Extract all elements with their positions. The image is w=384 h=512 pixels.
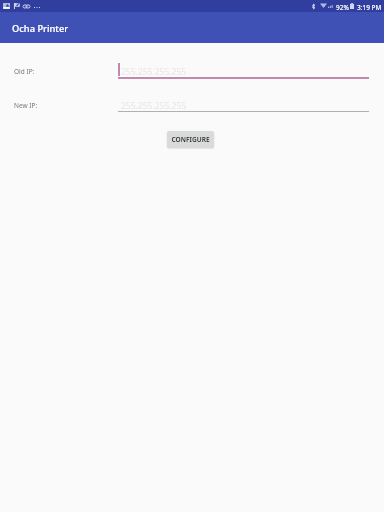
button[interactable]: Old IP address input [118, 63, 369, 79]
button[interactable]: New IP address input [118, 97, 369, 112]
other: Screenshot notification [3, 3, 10, 9]
staticText: 255.255.255.255 [121, 100, 187, 112]
staticText: Old IP: [14, 67, 35, 76]
other: Link notification [23, 4, 30, 9]
staticText: CONFIGURE [171, 135, 210, 144]
staticText: 255.255.255.255 [121, 66, 187, 78]
staticText: Ocha Printer [12, 22, 69, 35]
button[interactable]: CONFIGURE [167, 131, 214, 148]
staticText: 92% [336, 3, 349, 12]
staticText: New IP: [14, 101, 38, 110]
staticText: 3:19 PM [357, 3, 382, 12]
other: Flag notification [14, 3, 20, 9]
